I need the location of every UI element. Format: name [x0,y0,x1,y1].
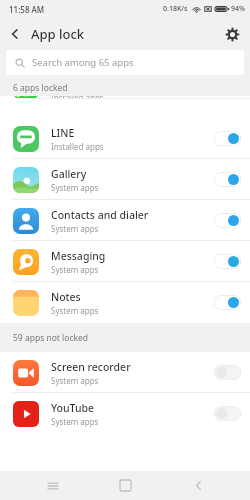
button[interactable]: App locked [214,254,241,269]
button[interactable]: App not locked [214,365,241,380]
button[interactable]: WhatsApp [0,96,250,99]
staticText: Screen recorder [51,360,131,374]
button[interactable]: App locked [214,295,241,310]
button[interactable]: LINE [0,118,250,159]
staticText: LINE [51,126,75,140]
staticText: System apps [51,264,99,275]
staticText: Installed apps [51,141,104,152]
staticText: YouTube [51,401,95,415]
staticText: 59 apps not locked [13,332,89,344]
staticText: Messaging [51,249,106,263]
button[interactable]: Back [2,21,28,47]
staticText: 11:58 AM [9,4,45,15]
button[interactable]: Notes [0,282,250,323]
staticText: 6 apps locked [13,82,68,94]
staticText: 94% [231,4,245,14]
button[interactable]: YouTube [0,393,250,434]
button[interactable]: Search among 65 apps [6,50,244,75]
staticText: System apps [51,375,99,386]
button[interactable]: App locked [214,213,241,228]
staticText: System apps [51,223,99,234]
button[interactable]: Screen recorder [0,352,250,393]
button[interactable]: Settings [220,22,244,46]
staticText: Installed apps [51,96,104,99]
staticText: Search among 65 apps [32,56,134,69]
button[interactable]: Messaging [0,241,250,282]
staticText: System apps [51,416,99,427]
button[interactable]: Contacts and dialer [0,200,250,241]
button[interactable]: App locked [214,131,241,146]
staticText: Notes [51,290,81,304]
button[interactable]: App locked [214,172,241,187]
staticText: Gallery [51,167,87,181]
button[interactable]: Recents [33,471,73,500]
staticText: Contacts and dialer [51,208,149,222]
button[interactable]: Gallery [0,159,250,200]
staticText: App lock [31,25,85,43]
button[interactable]: Back [178,471,218,500]
button[interactable]: Home [105,471,145,500]
staticText: System apps [51,305,99,316]
button[interactable]: App not locked [214,406,241,421]
staticText: 0.18K/s [163,4,188,14]
staticText: System apps [51,182,99,193]
